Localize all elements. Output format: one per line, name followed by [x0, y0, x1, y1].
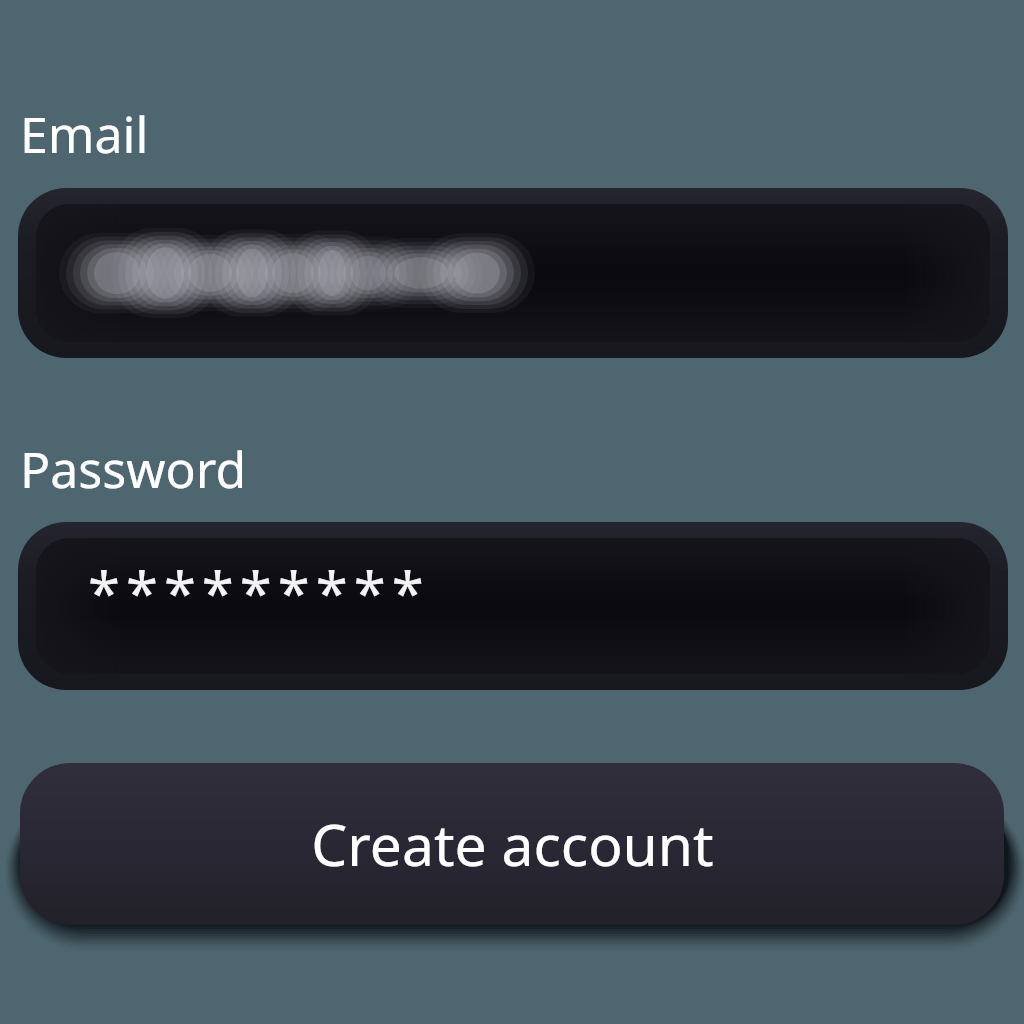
button[interactable]: Email input field: [18, 188, 1008, 358]
staticText: Create account: [311, 805, 714, 883]
button[interactable]: Password input field: [18, 522, 1008, 690]
staticText: Email: [20, 100, 149, 168]
staticText: *********: [88, 553, 430, 632]
staticText: Password: [20, 435, 247, 503]
button[interactable]: Create account: [20, 763, 1004, 925]
